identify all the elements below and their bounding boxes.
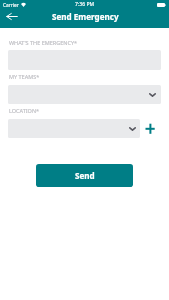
- staticText: WHAT'S THE EMERGENCY*: [9, 39, 78, 46]
- staticText: MY TEAMS*: [9, 73, 40, 80]
- button[interactable]: Send: [36, 164, 133, 187]
- staticText: LOCATION*: [9, 107, 40, 114]
- button[interactable]: Back: [2, 7, 22, 27]
- staticText: Send: [75, 170, 95, 181]
- staticText: Carrier: [3, 2, 19, 9]
- button[interactable]: My teams dropdown: [8, 85, 161, 104]
- button[interactable]: Location dropdown: [8, 119, 140, 138]
- staticText: Send Emergency: [52, 11, 119, 22]
- staticText: 7:36 PM: [75, 1, 95, 8]
- button[interactable]: Add location: [141, 119, 160, 137]
